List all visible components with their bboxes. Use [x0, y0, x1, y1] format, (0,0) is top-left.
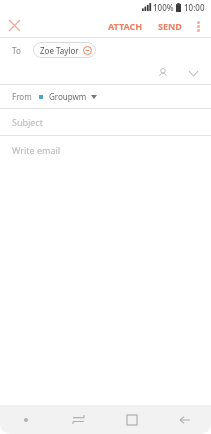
staticText: SEND	[158, 20, 182, 32]
button[interactable]: More options	[187, 15, 209, 37]
staticText: ATTACH	[108, 20, 143, 32]
staticText: Zoe Taylor	[40, 45, 79, 56]
button[interactable]: Keyboard toggle	[0, 405, 52, 434]
staticText: 100%	[153, 2, 174, 13]
staticText: 10:00	[184, 2, 205, 13]
button[interactable]: Switch	[52, 405, 105, 434]
button[interactable]: SEND	[153, 16, 187, 36]
staticText: Write email	[12, 144, 61, 156]
button[interactable]: Back	[158, 405, 211, 434]
staticText: To	[12, 45, 21, 56]
staticText: Groupwm	[49, 91, 87, 102]
button[interactable]: Subject	[0, 109, 211, 135]
staticText: From	[12, 91, 32, 102]
staticText: Subject	[12, 116, 44, 128]
button[interactable]: ATTACH	[103, 16, 148, 36]
button[interactable]: Expand recipients	[183, 63, 203, 83]
button[interactable]: Close	[0, 14, 28, 37]
button[interactable]: Recent apps	[105, 405, 158, 434]
button[interactable]: Zoe Taylor	[33, 42, 96, 58]
button[interactable]: Write email	[0, 136, 211, 176]
button[interactable]: From	[12, 85, 211, 108]
button[interactable]: Add recipient from contacts	[153, 63, 173, 83]
